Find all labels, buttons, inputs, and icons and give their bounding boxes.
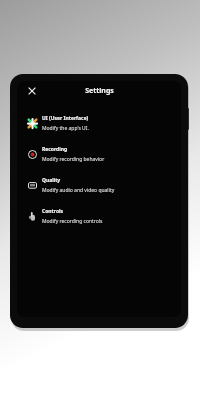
other: Controls settings — [28, 212, 37, 221]
button[interactable]: Controls settings — [17, 201, 181, 232]
button[interactable]: Recording settings — [17, 139, 181, 170]
button[interactable]: Close — [25, 84, 39, 98]
staticText: Modify recording controls — [42, 218, 103, 225]
other: Recording settings — [28, 150, 37, 159]
button[interactable]: Quality settings — [17, 170, 181, 201]
staticText: Modify the app's UI. — [42, 125, 89, 132]
staticText: Modify recording behavior — [42, 156, 105, 163]
button[interactable]: UI settings — [17, 108, 181, 139]
staticText: Settings — [85, 86, 114, 96]
other: UI settings — [28, 119, 37, 128]
staticText: Controls — [42, 208, 64, 215]
staticText: Modify audio and video quality — [42, 187, 115, 194]
staticText: UI (User Interface) — [42, 115, 89, 122]
other: Quality settings — [28, 181, 37, 190]
staticText: Recording — [42, 146, 68, 153]
staticText: Quality — [42, 177, 61, 184]
